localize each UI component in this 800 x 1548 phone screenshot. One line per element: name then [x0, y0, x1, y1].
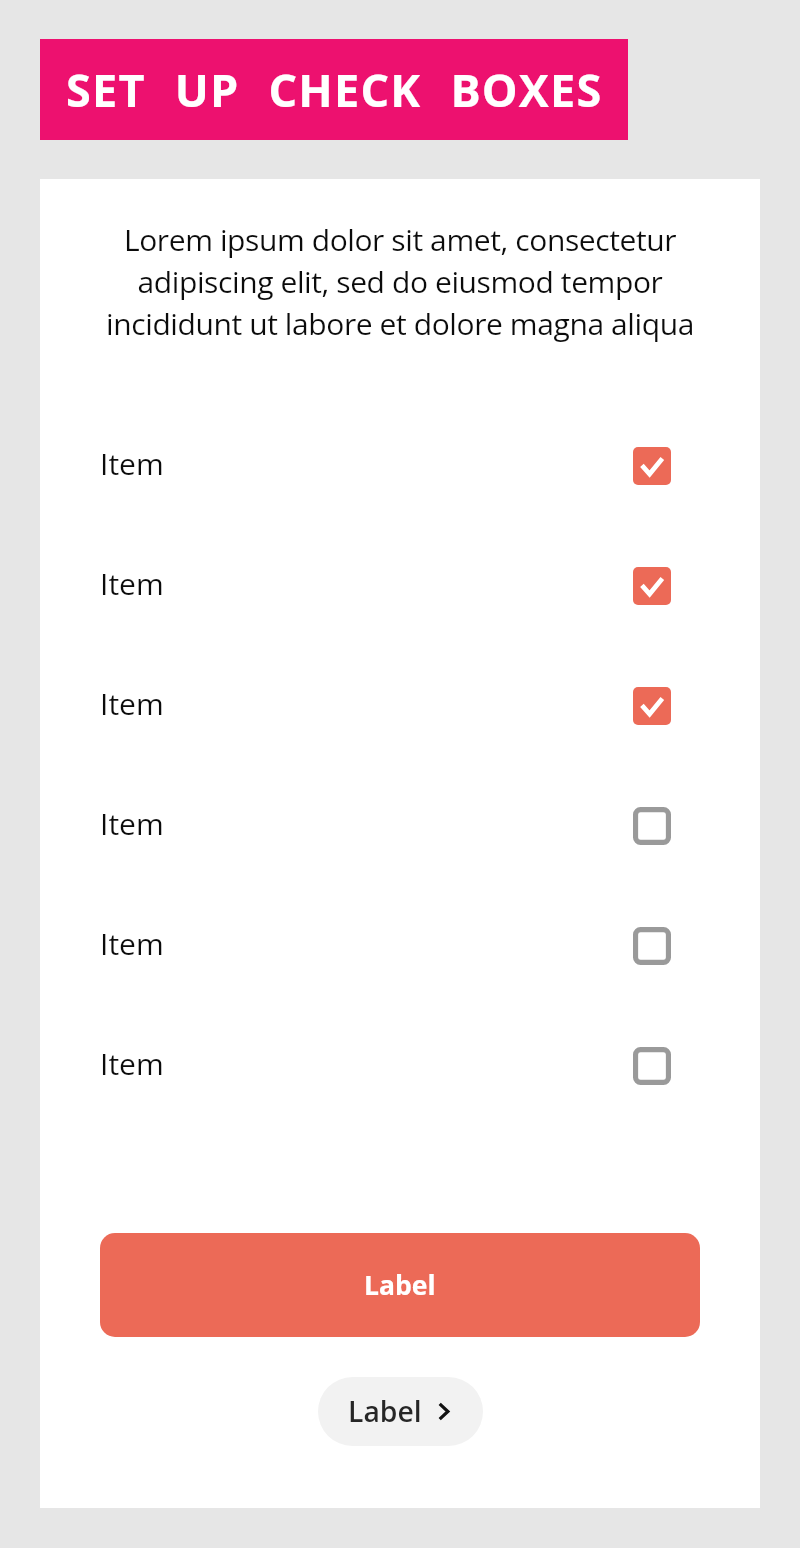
- button[interactable]: Item: [40, 1006, 760, 1126]
- button[interactable]: Item: [40, 406, 760, 526]
- button[interactable]: Item: [40, 526, 760, 646]
- button[interactable]: SET UP CHECK BOXES: [40, 39, 628, 140]
- staticText: Item: [100, 683, 164, 724]
- button[interactable]: Checked checkbox: [633, 447, 671, 485]
- button[interactable]: Checked checkbox: [633, 687, 671, 725]
- staticText: Item: [100, 803, 164, 844]
- button[interactable]: Item: [40, 886, 760, 1006]
- button[interactable]: Label: [100, 1233, 700, 1337]
- staticText: Lorem ipsum dolor sit amet, consectetur …: [96, 219, 704, 344]
- button[interactable]: Unchecked checkbox: [633, 1047, 671, 1085]
- button[interactable]: Unchecked checkbox: [633, 927, 671, 965]
- button[interactable]: Checked checkbox: [633, 567, 671, 605]
- button[interactable]: Item: [40, 766, 760, 886]
- staticText: Label: [348, 1392, 422, 1431]
- button[interactable]: Item: [40, 646, 760, 766]
- other: Next: [434, 1402, 453, 1421]
- staticText: Item: [100, 443, 164, 484]
- staticText: Item: [100, 1043, 164, 1084]
- staticText: Label: [364, 1267, 436, 1303]
- staticText: Item: [100, 923, 164, 964]
- staticText: Item: [100, 563, 164, 604]
- button[interactable]: Unchecked checkbox: [633, 807, 671, 845]
- staticText: SET UP CHECK BOXES: [66, 59, 603, 120]
- button[interactable]: Label: [318, 1377, 483, 1446]
